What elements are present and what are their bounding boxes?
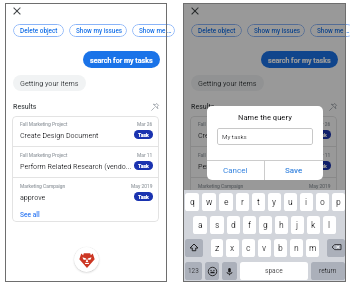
button[interactable]: y <box>268 193 281 211</box>
staticText: o <box>320 197 325 207</box>
button[interactable]: v <box>258 239 271 257</box>
staticText: See all <box>198 211 218 219</box>
button[interactable]: d <box>227 216 240 234</box>
button[interactable]: Save <box>265 161 323 180</box>
button[interactable]: i <box>300 193 313 211</box>
button[interactable]: Fall Marketing Project <box>190 116 337 146</box>
button[interactable]: 123 <box>185 262 202 280</box>
staticText: approve <box>198 193 310 201</box>
staticText: May 2019 <box>131 183 153 189</box>
staticText: Show me my tasks <box>317 27 350 35</box>
staticText: Show my issues <box>254 27 301 35</box>
button[interactable]: Shift <box>185 239 203 257</box>
staticText: Show me my tasks <box>139 27 175 35</box>
button[interactable]: Close <box>187 3 202 18</box>
staticText: y <box>272 197 277 207</box>
staticText: l <box>328 220 331 230</box>
staticText: Getting your items <box>20 79 79 87</box>
button[interactable]: x <box>226 239 239 257</box>
button[interactable]: f <box>243 216 256 234</box>
button[interactable]: search for my tasks <box>83 51 160 68</box>
button[interactable]: m <box>306 239 319 257</box>
staticText: Create Design Document <box>198 131 310 139</box>
staticText: g <box>263 220 268 230</box>
staticText: Save <box>285 166 303 175</box>
button[interactable]: g <box>259 216 272 234</box>
button[interactable]: k <box>307 216 320 234</box>
staticText: Show my issues <box>76 27 123 35</box>
button[interactable]: Getting your items <box>13 75 86 91</box>
button[interactable]: Emoji <box>205 262 219 280</box>
button[interactable]: Dictate <box>222 262 237 280</box>
button[interactable]: s <box>210 216 224 234</box>
button[interactable]: My tasks <box>217 128 313 145</box>
staticText: Mar 26 <box>315 121 331 127</box>
button[interactable]: a <box>193 216 207 234</box>
staticText: Task <box>138 163 149 169</box>
staticText: a <box>198 220 203 230</box>
button[interactable]: n <box>290 239 303 257</box>
button[interactable]: Show my issues <box>247 24 305 37</box>
button[interactable]: Fall Marketing Project <box>12 116 159 146</box>
button[interactable]: p <box>332 193 345 211</box>
staticText: Task <box>316 132 327 138</box>
button[interactable]: Pin <box>150 102 160 112</box>
button[interactable]: o <box>316 193 329 211</box>
button[interactable]: Close <box>9 3 24 18</box>
button[interactable]: j <box>291 216 304 234</box>
staticText: 123 <box>188 267 199 275</box>
staticText: q <box>190 197 195 207</box>
staticText: j <box>296 220 299 230</box>
button[interactable]: Fall Marketing Project <box>190 147 337 177</box>
button[interactable]: z <box>211 239 223 257</box>
button[interactable]: search for my tasks <box>261 51 338 68</box>
staticText: u <box>288 197 293 207</box>
button[interactable]: Delete object <box>13 24 64 37</box>
button[interactable]: h <box>275 216 288 234</box>
button[interactable]: q <box>185 193 199 211</box>
button[interactable]: Show me my tasks <box>132 24 175 37</box>
staticText: return <box>319 267 337 275</box>
staticText: i <box>305 197 308 207</box>
staticText: z <box>215 243 220 253</box>
button[interactable]: Pin <box>328 102 338 112</box>
button[interactable]: space <box>240 262 308 280</box>
staticText: t <box>257 197 260 207</box>
button[interactable]: Marketing Campaign <box>190 178 337 208</box>
button[interactable]: u <box>284 193 297 211</box>
button[interactable]: See all <box>190 208 337 222</box>
staticText: s <box>215 220 220 230</box>
staticText: Task <box>138 132 149 138</box>
button[interactable]: Show my issues <box>69 24 127 37</box>
staticText: search for my tasks <box>90 56 153 64</box>
button[interactable]: Getting your items <box>191 75 264 91</box>
button[interactable]: Marketing Campaign <box>12 178 159 208</box>
button[interactable]: c <box>242 239 255 257</box>
staticText: v <box>262 243 267 253</box>
button[interactable]: w <box>202 193 216 211</box>
staticText: Delete object <box>198 27 236 35</box>
button[interactable]: Brave <box>74 247 99 272</box>
staticText: Getting your items <box>198 79 257 87</box>
staticText: r <box>241 197 244 207</box>
button[interactable]: Backspace <box>327 239 345 257</box>
button[interactable]: See all <box>12 208 159 222</box>
button[interactable]: r <box>236 193 249 211</box>
button[interactable]: return <box>311 262 345 280</box>
staticText: Results <box>191 103 328 111</box>
staticText: f <box>248 220 251 230</box>
button[interactable]: Fall Marketing Project <box>12 147 159 177</box>
staticText: Fall Marketing Project <box>198 121 315 127</box>
staticText: Marketing Campaign <box>20 183 131 189</box>
button[interactable]: e <box>219 193 233 211</box>
button[interactable]: Show me my tasks <box>310 24 350 37</box>
staticText: Cancel <box>223 166 248 175</box>
staticText: Task <box>138 194 149 200</box>
button[interactable]: Cancel <box>207 161 264 180</box>
button[interactable]: Delete object <box>191 24 242 37</box>
button[interactable]: t <box>252 193 265 211</box>
button[interactable]: l <box>323 216 336 234</box>
button[interactable]: Brave <box>252 247 277 272</box>
staticText: c <box>246 243 251 253</box>
button[interactable]: b <box>274 239 287 257</box>
